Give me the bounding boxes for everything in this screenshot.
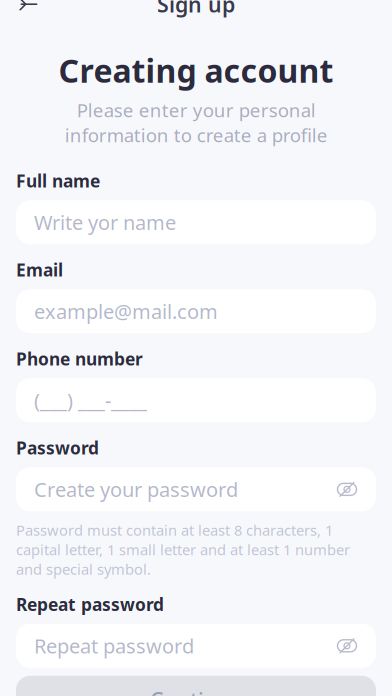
button[interactable]: example@mail.com [16, 289, 376, 333]
staticText: Email [16, 258, 63, 281]
staticText: Password [16, 436, 99, 459]
button[interactable]: Continue [16, 676, 376, 696]
staticText: Sign up [157, 0, 235, 18]
staticText: Phone number [16, 347, 143, 370]
button[interactable]: Back [6, 0, 50, 26]
staticText: Repeat password [16, 593, 164, 616]
staticText: Create your password [34, 476, 238, 503]
staticText: Password must contain at least 8 charact… [16, 520, 350, 579]
button[interactable]: Create your password [16, 467, 376, 511]
staticText: Write yor name [34, 209, 176, 236]
staticText: Repeat password [34, 632, 194, 659]
staticText: example@mail.com [34, 298, 218, 325]
button[interactable]: (___) ___-____ [16, 378, 376, 422]
staticText: (___) ___-____ [34, 387, 147, 414]
staticText: Please enter your personal information t… [64, 98, 327, 147]
button[interactable]: Repeat password [16, 624, 376, 668]
staticText: Creating account [58, 49, 333, 92]
staticText: Full name [16, 169, 100, 192]
button[interactable]: Write yor name [16, 200, 376, 244]
staticText: Continue [150, 686, 242, 696]
